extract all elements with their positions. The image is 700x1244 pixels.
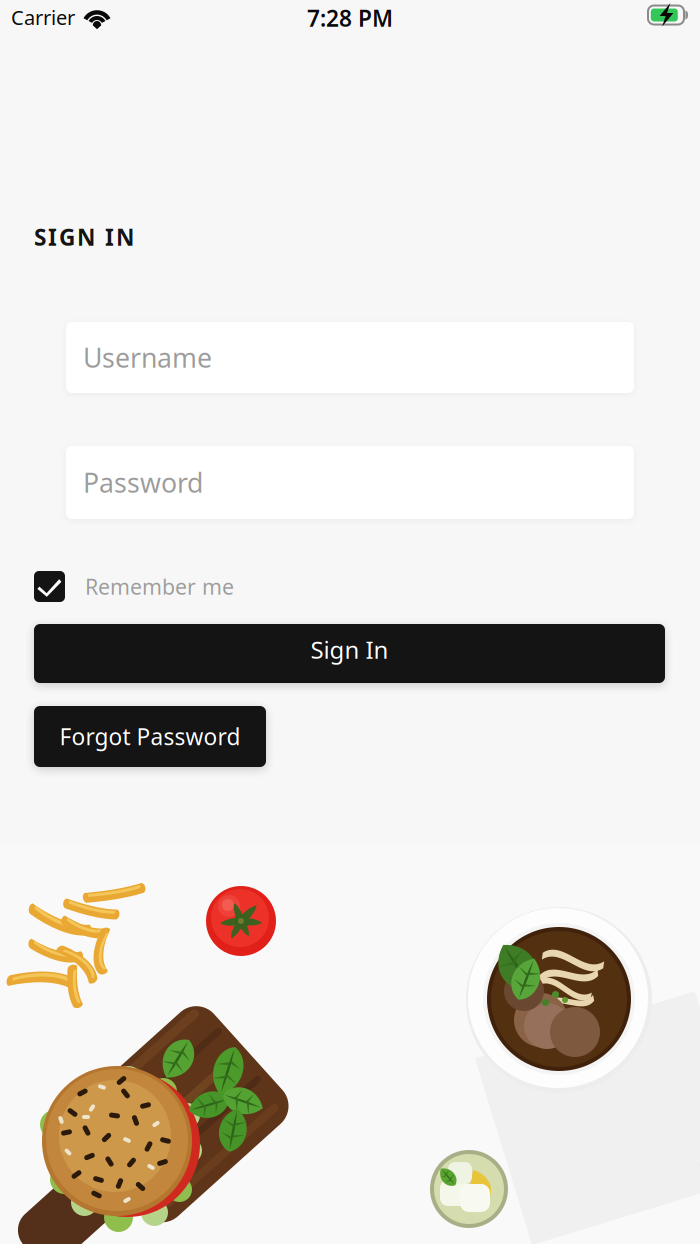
staticText: Password (83, 465, 203, 500)
staticText: Username (83, 340, 212, 375)
button[interactable]: Remember me (34, 571, 294, 602)
staticText: Remember me (85, 572, 234, 601)
staticText: SIGN IN (34, 222, 134, 246)
staticText: Sign In (310, 634, 388, 665)
staticText: Carrier (11, 4, 75, 26)
button[interactable]: Forgot Password (34, 706, 266, 767)
button[interactable]: Sign In (34, 624, 665, 683)
staticText: Forgot Password (59, 721, 240, 751)
staticText: 7:28 PM (307, 3, 393, 25)
